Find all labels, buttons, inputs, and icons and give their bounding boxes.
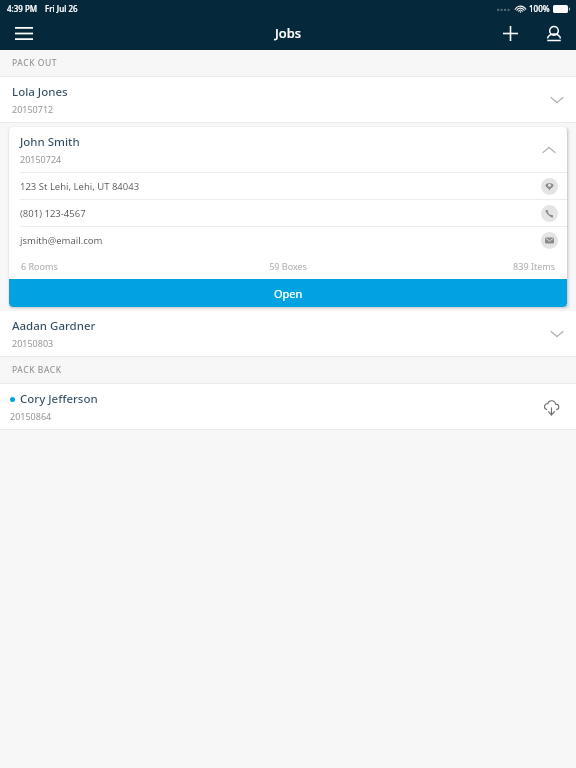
staticText: 123 St Lehi, Lehi, UT 84043 [20,180,541,193]
staticText: (801) 123-4567 [20,207,541,220]
button[interactable]: Email [541,232,558,249]
staticText: Open [274,286,303,301]
staticText: Lola Jones [12,84,68,100]
button[interactable]: John Smith [9,127,567,172]
button[interactable]: Account [532,16,576,50]
staticText: 20150724 [20,153,62,165]
staticText: Jobs [275,24,302,42]
staticText: 20150864 [10,410,52,422]
staticText: PACK OUT [12,57,58,69]
staticText: 839 Items [377,260,555,272]
button[interactable]: Lola Jones [0,77,576,122]
button[interactable]: (801) 123-4567 [9,200,567,226]
staticText: 4:39 PM [7,3,38,14]
staticText: PACK BACK [12,364,62,376]
button[interactable]: Download [538,394,564,420]
staticText: 59 Boxes [199,260,377,272]
staticText: Cory Jefferson [20,391,98,407]
staticText: 20150803 [12,337,54,349]
button[interactable]: Call [541,205,558,222]
staticText: Fri Jul 26 [45,3,78,14]
button[interactable]: Menu [0,16,48,50]
staticText: 20150712 [12,103,54,115]
staticText: 6 Rooms [21,260,199,272]
button[interactable]: Cory Jefferson [0,384,576,429]
button[interactable]: Map [541,178,558,195]
button[interactable]: Aadan Gardner [0,311,576,356]
staticText: jsmith@email.com [20,234,541,247]
staticText: John Smith [20,134,80,150]
button[interactable]: Open [9,279,567,307]
button[interactable]: jsmith@email.com [9,227,567,253]
button[interactable]: 123 St Lehi, Lehi, UT 84043 [9,173,567,199]
staticText: 100% [529,3,550,14]
button[interactable]: Add job [488,16,532,50]
staticText: Aadan Gardner [12,318,96,334]
